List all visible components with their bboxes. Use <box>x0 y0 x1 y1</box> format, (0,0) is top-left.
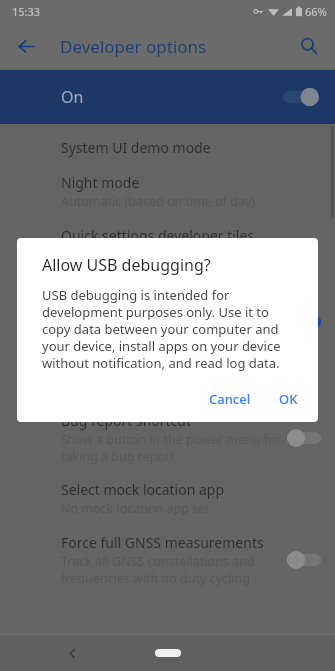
staticText: Cancel <box>209 390 251 408</box>
button[interactable]: Cancel <box>199 382 261 416</box>
button[interactable]: Bug report shortcut <box>0 403 335 472</box>
staticText: Bug report shortcut <box>61 411 192 430</box>
button[interactable] <box>0 299 335 345</box>
staticText: Force full GNSS measurements <box>61 533 264 552</box>
staticText: USB debugging is intended for developmen… <box>42 286 298 372</box>
staticText: No mock location app set <box>61 500 210 517</box>
button[interactable]: Night mode <box>0 165 335 218</box>
staticText: Select mock location app <box>61 480 225 499</box>
button[interactable]: Select mock location app <box>0 472 335 525</box>
button[interactable]: Back <box>8 28 44 64</box>
button[interactable]: Force full GNSS measurements <box>0 525 335 594</box>
button[interactable]: Search <box>291 28 327 64</box>
staticText: On <box>61 86 84 108</box>
staticText: Developer options <box>60 35 207 58</box>
staticText: 15:33 <box>12 4 41 19</box>
button[interactable] <box>0 253 335 299</box>
button[interactable]: Home <box>143 642 193 664</box>
staticText: Quick settings developer tiles <box>61 226 255 245</box>
staticText: 66% <box>305 4 327 19</box>
button[interactable]: On <box>0 70 335 124</box>
button[interactable]: OK <box>269 382 308 416</box>
staticText: OK <box>279 390 298 408</box>
staticText: Automatic (based on time of day) <box>61 193 256 210</box>
staticText: System UI demo mode <box>61 138 211 157</box>
staticText: Night mode <box>61 173 140 192</box>
button[interactable]: Quick settings developer tiles <box>0 218 335 253</box>
button[interactable] <box>0 345 335 391</box>
button[interactable]: Back <box>56 637 88 669</box>
staticText: Allow USB debugging? <box>42 254 211 276</box>
staticText: Show a button in the power menu for taki… <box>61 431 281 464</box>
staticText: Track all GNSS constellations and freque… <box>61 553 255 586</box>
button[interactable]: System UI demo mode <box>0 130 335 165</box>
